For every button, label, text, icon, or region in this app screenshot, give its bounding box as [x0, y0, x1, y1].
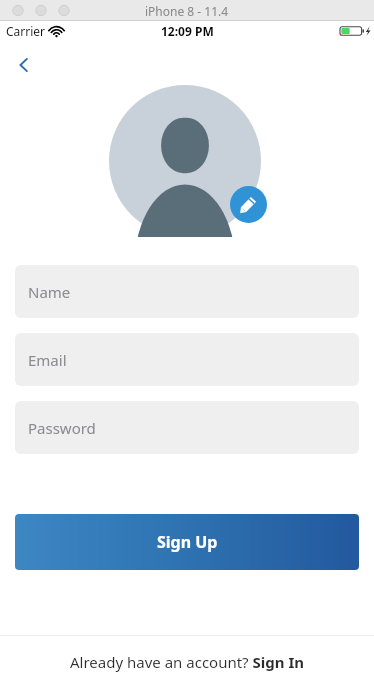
staticText: Name	[28, 282, 71, 302]
staticText: 12:09 PM	[161, 23, 214, 39]
staticText: Email	[28, 350, 67, 370]
staticText: Carrier	[6, 23, 46, 39]
staticText: iPhone 8 - 11.4	[145, 3, 229, 19]
staticText: Password	[28, 418, 96, 438]
button[interactable]: Sign Up	[15, 514, 359, 570]
button[interactable]: Password	[15, 401, 359, 454]
staticText: Already have an account? Sign In	[70, 652, 304, 672]
staticText: Sign Up	[157, 531, 218, 553]
button[interactable]: Name	[15, 265, 359, 318]
button[interactable]: Already have an account? Sign In	[58, 644, 316, 680]
button[interactable]: Edit profile photo	[230, 186, 267, 223]
button[interactable]: Email	[15, 333, 359, 386]
button[interactable]: Back	[4, 45, 44, 85]
